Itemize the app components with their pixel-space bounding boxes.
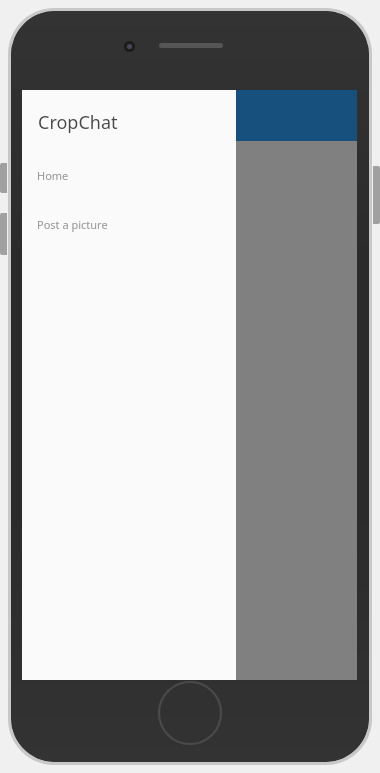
button[interactable]: CropChat [22, 103, 236, 141]
staticText: Home [37, 168, 69, 183]
button[interactable]: Post a picture [22, 212, 236, 237]
staticText: Post a picture [37, 217, 108, 232]
button[interactable]: Home [22, 163, 236, 188]
staticText: CropChat [38, 110, 118, 135]
